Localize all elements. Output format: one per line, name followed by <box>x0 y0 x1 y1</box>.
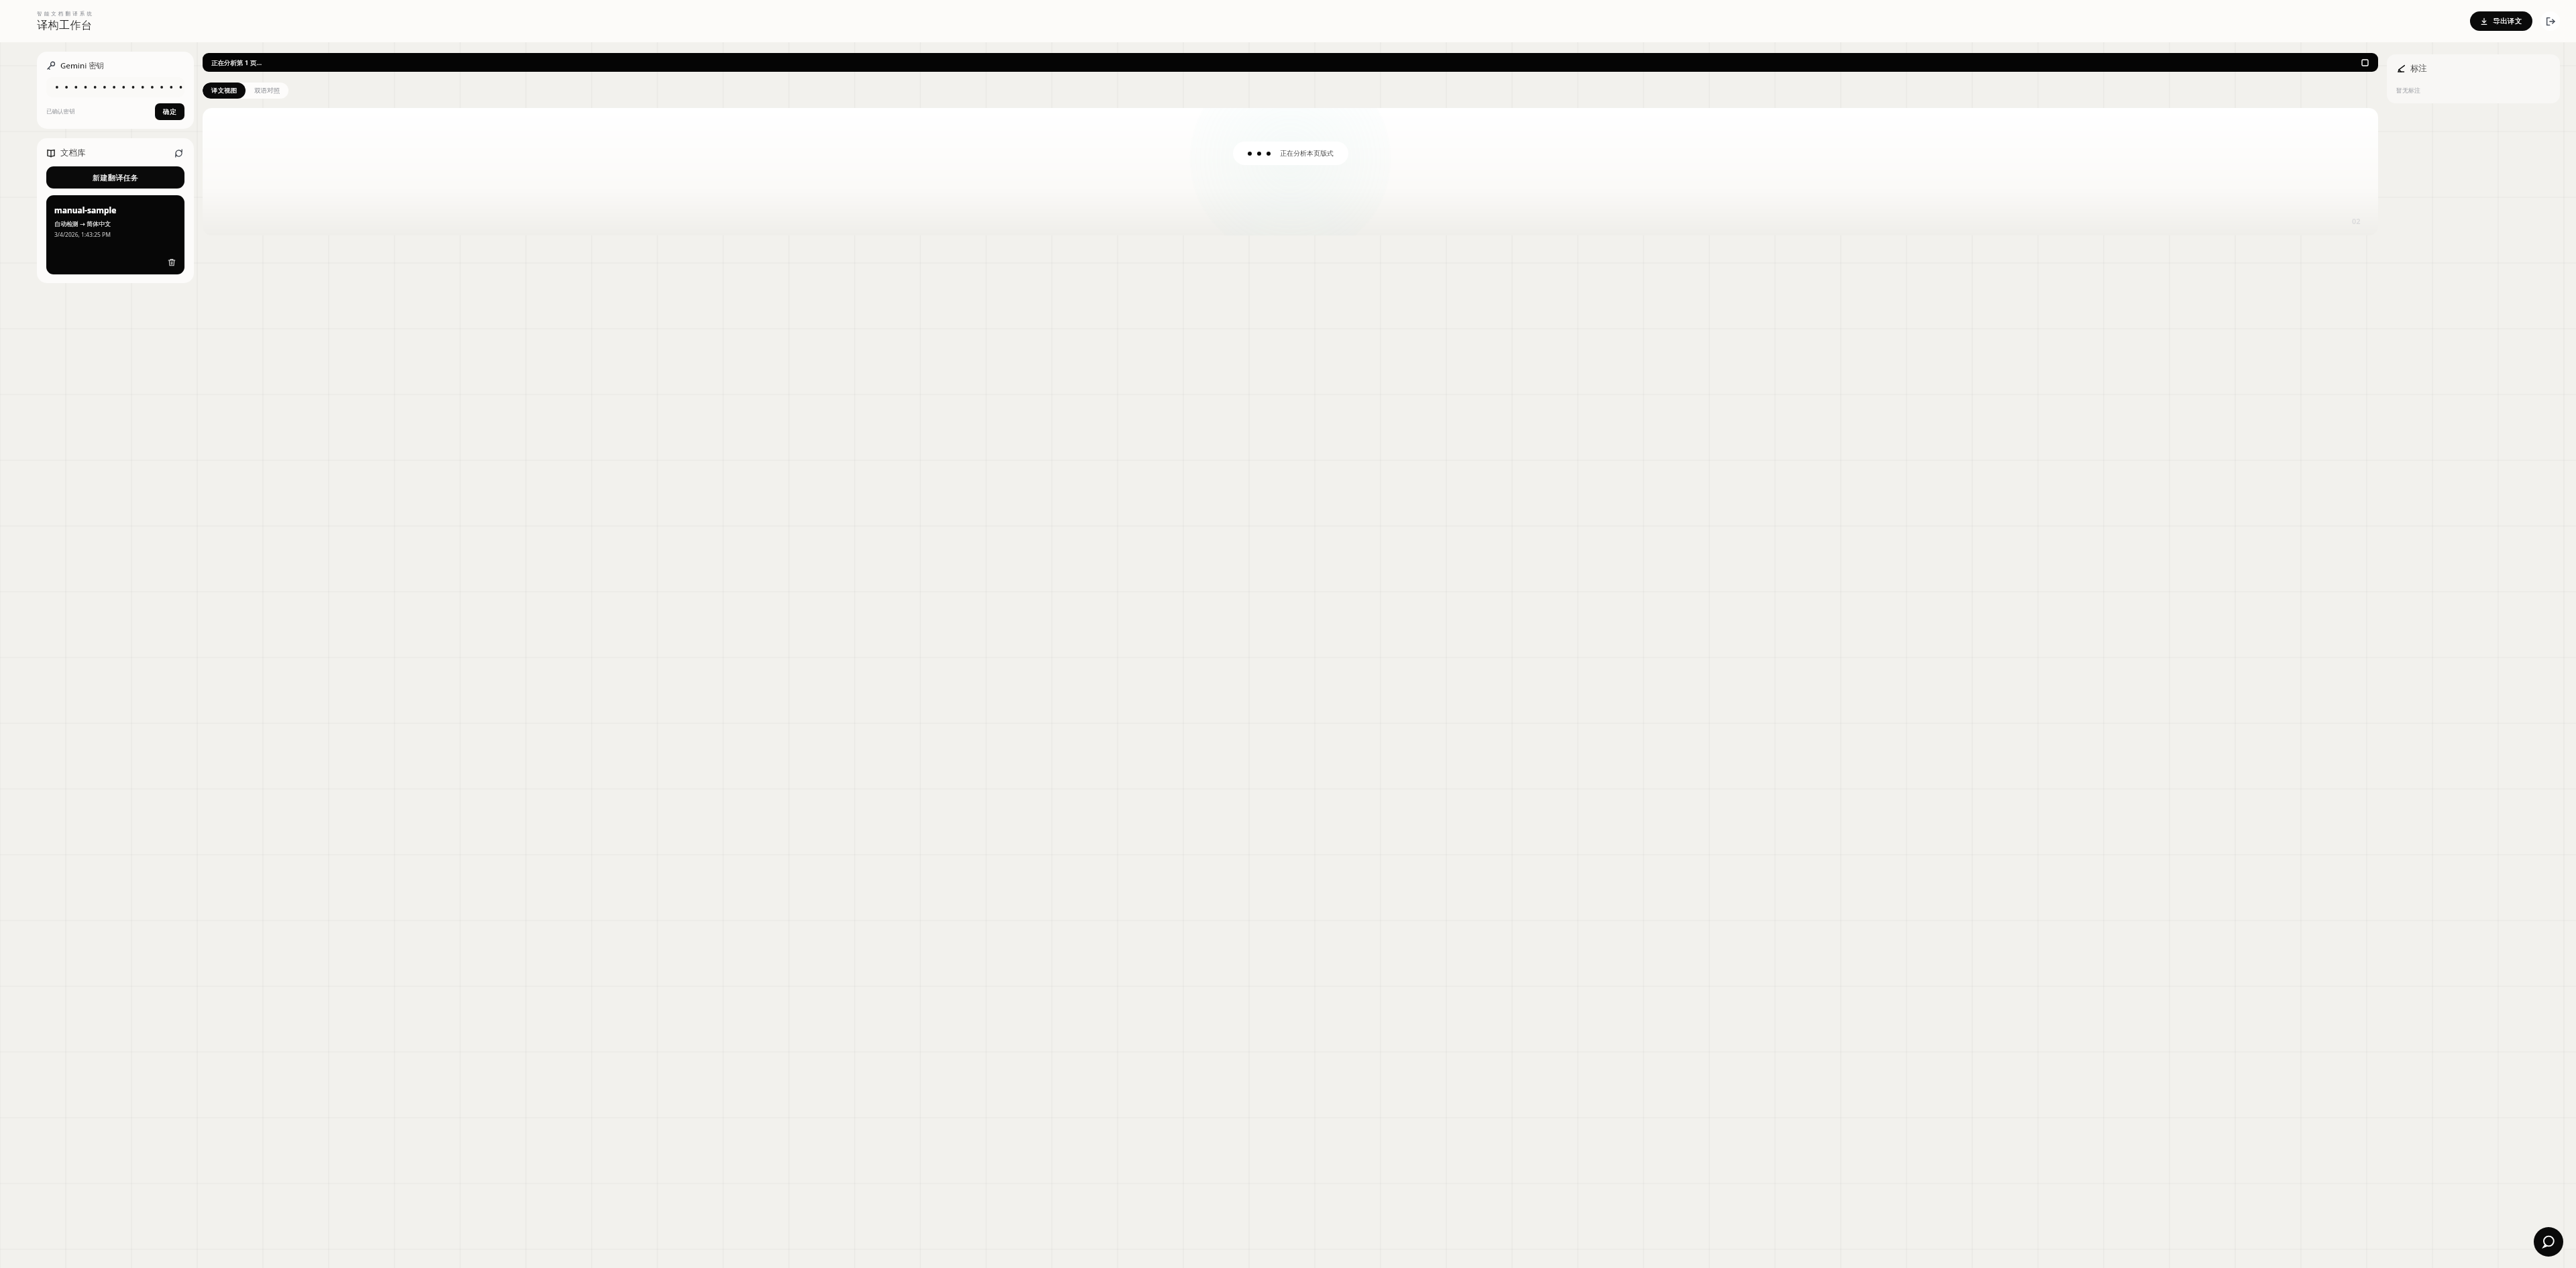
button[interactable]: Sign out <box>2540 11 2560 31</box>
button[interactable]: Refresh <box>172 147 184 159</box>
staticText: 02 <box>2352 216 2361 226</box>
button[interactable]: Chat <box>2534 1227 2563 1257</box>
staticText: 文档库 <box>60 148 86 158</box>
button[interactable]: 译文视图 <box>203 83 246 99</box>
button[interactable]: 双语对照 <box>246 83 288 99</box>
staticText: manual-sample <box>54 205 117 215</box>
staticText: 自动检测 → 简体中文 <box>54 219 111 227</box>
staticText: 已确认密钥 <box>46 108 75 115</box>
button[interactable]: 正在分析第 1 页... <box>203 53 2378 72</box>
staticText: 3/4/2026, 1:43:25 PM <box>54 231 111 239</box>
staticText: 新建翻译任务 <box>93 173 139 182</box>
button[interactable] <box>46 77 184 97</box>
button[interactable]: 新建翻译任务 <box>46 166 184 189</box>
staticText: 暂无标注 <box>2396 87 2420 94</box>
staticText: 导出译文 <box>2493 17 2522 25</box>
staticText: Gemini 密钥 <box>60 60 105 71</box>
button[interactable]: Delete <box>166 257 177 268</box>
staticText: 译构工作台 <box>37 19 93 32</box>
staticText: 双语对照 <box>254 87 280 95</box>
staticText: 标注 <box>2410 63 2427 74</box>
button[interactable]: manual-sample <box>46 195 184 274</box>
staticText: 正在分析第 1 页... <box>211 58 262 67</box>
button[interactable]: 导出译文 <box>2470 11 2532 31</box>
staticText: 智 能 文 档 翻 译 系 统 <box>37 10 93 17</box>
staticText: 确定 <box>163 107 176 116</box>
button[interactable]: Stop <box>2360 58 2369 67</box>
button[interactable]: 确定 <box>155 103 184 120</box>
staticText: 正在分析本页版式 <box>1280 149 1334 158</box>
staticText: 译文视图 <box>211 87 237 95</box>
